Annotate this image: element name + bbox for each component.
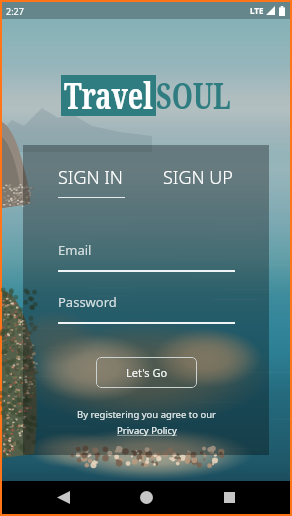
button[interactable]: SIGN UP [163,165,233,190]
button[interactable]: Home [124,481,168,514]
button[interactable]: SIGN IN [58,165,125,198]
staticText: Password [58,293,117,311]
button[interactable]: Back [41,481,85,514]
button[interactable]: Privacy Policy [117,424,177,437]
button[interactable]: Recent apps [207,481,251,514]
staticText: By registering you agree to our [77,408,216,421]
staticText: Travel [64,71,153,120]
staticText: SOUL [156,71,231,120]
staticText: LTE [250,5,264,16]
staticText: Email [58,241,92,259]
staticText: Let's Go [126,365,168,380]
staticText: 2:27 [6,5,24,17]
button[interactable]: Let's Go [96,357,197,388]
staticText: SIGN IN [58,165,123,190]
